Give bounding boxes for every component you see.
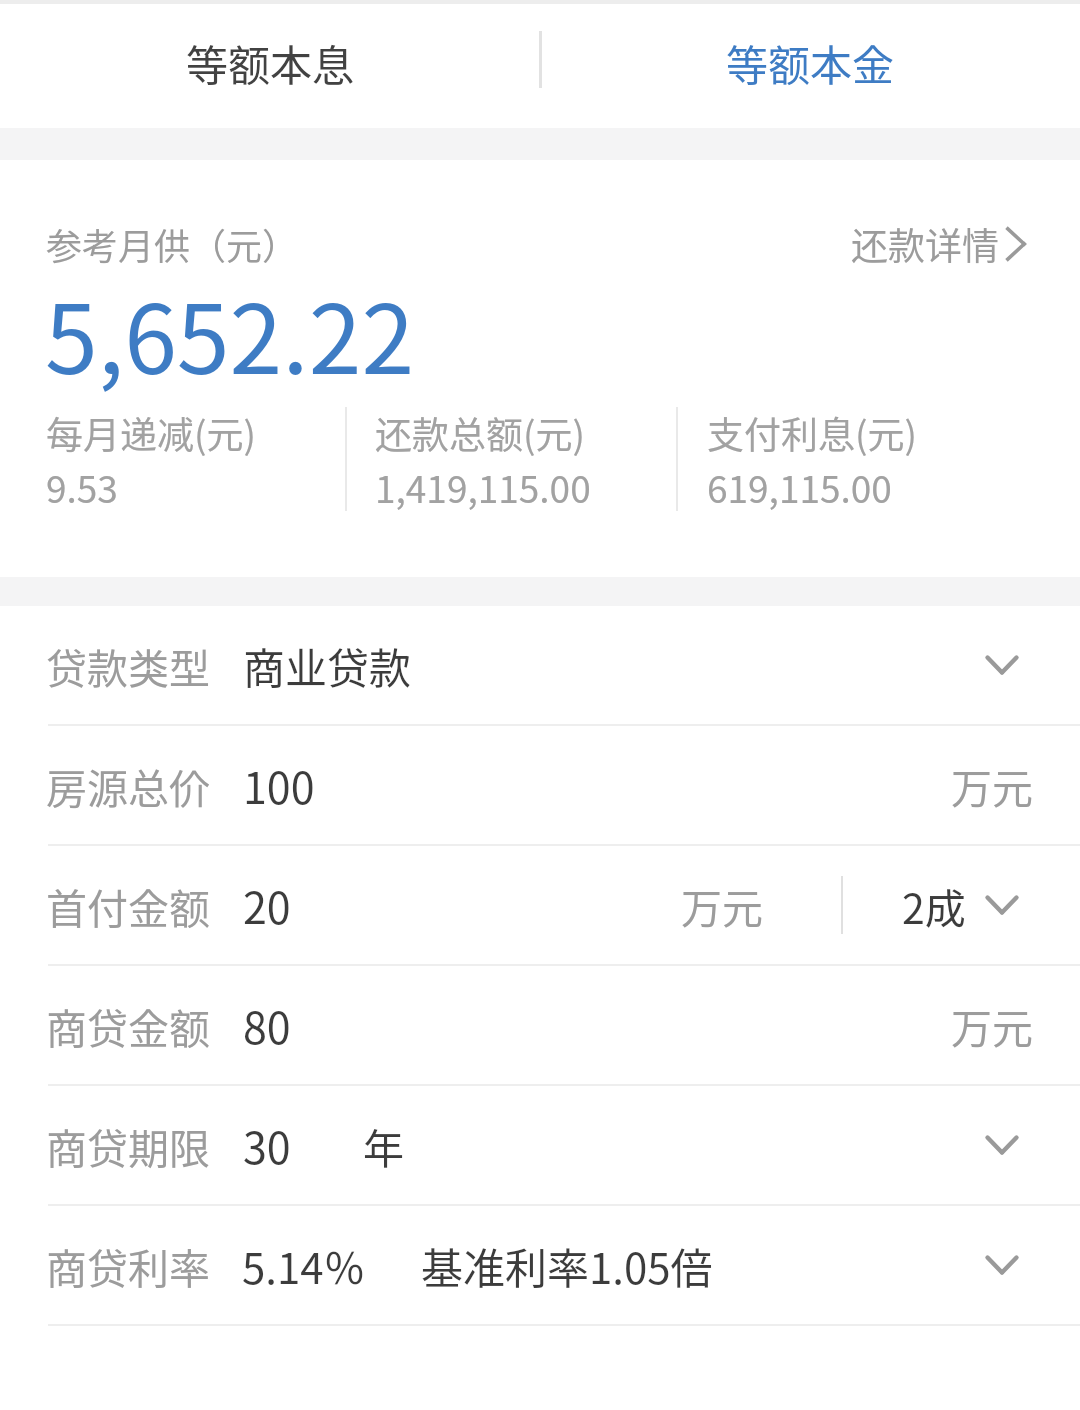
staticText: 每月递减(元) <box>46 406 257 460</box>
staticText: 80 <box>243 994 291 1056</box>
button[interactable]: 贷款类型 <box>0 606 1080 724</box>
button[interactable]: 商贷金额 <box>0 966 1080 1084</box>
staticText: 5,652.22 <box>45 264 415 402</box>
staticText: 年 <box>363 1116 404 1175</box>
button[interactable]: 商贷利率 <box>0 1206 1080 1324</box>
button[interactable]: 首付金额 <box>0 846 1080 964</box>
staticText: 万元 <box>951 756 1033 815</box>
button[interactable]: 商贷期限 <box>0 1086 1080 1204</box>
staticText: 商业贷款 <box>243 635 412 696</box>
staticText: 首付金额 <box>46 876 210 935</box>
staticText: 100 <box>243 754 315 816</box>
other: 展开 <box>985 655 1019 675</box>
staticText: 基准利率1.05倍 <box>421 1235 713 1296</box>
staticText: 商贷期限 <box>46 1116 210 1175</box>
button[interactable]: 等额本金 <box>540 4 1080 128</box>
other: 展开 <box>985 895 1019 915</box>
staticText: 房源总价 <box>46 756 210 815</box>
other: 展开 <box>985 1135 1019 1155</box>
button[interactable]: 还款详情 <box>851 217 1034 271</box>
staticText: 万元 <box>951 996 1033 1055</box>
staticText: 5.14％ <box>242 1235 366 1296</box>
staticText: 还款详情 <box>851 217 999 271</box>
other: 展开 <box>985 1255 1019 1275</box>
staticText: 还款总额(元) <box>375 406 586 460</box>
staticText: 619,115.00 <box>707 460 892 514</box>
button[interactable]: 等额本息 <box>0 4 540 128</box>
staticText: 2成 <box>902 876 966 935</box>
staticText: 1,419,115.00 <box>375 460 591 514</box>
staticText: 商贷金额 <box>46 996 210 1055</box>
staticText: 贷款类型 <box>46 636 210 695</box>
staticText: 参考月供（元） <box>46 218 299 270</box>
staticText: 商贷利率 <box>46 1236 210 1295</box>
button[interactable]: 房源总价 <box>0 726 1080 844</box>
staticText: 万元 <box>681 876 763 935</box>
staticText: 30 <box>243 1114 291 1176</box>
staticText: 20 <box>243 874 291 936</box>
staticText: 等额本金 <box>726 32 895 93</box>
staticText: 支付利息(元) <box>707 406 918 460</box>
staticText: 9.53 <box>46 460 118 514</box>
staticText: 等额本息 <box>186 32 355 93</box>
